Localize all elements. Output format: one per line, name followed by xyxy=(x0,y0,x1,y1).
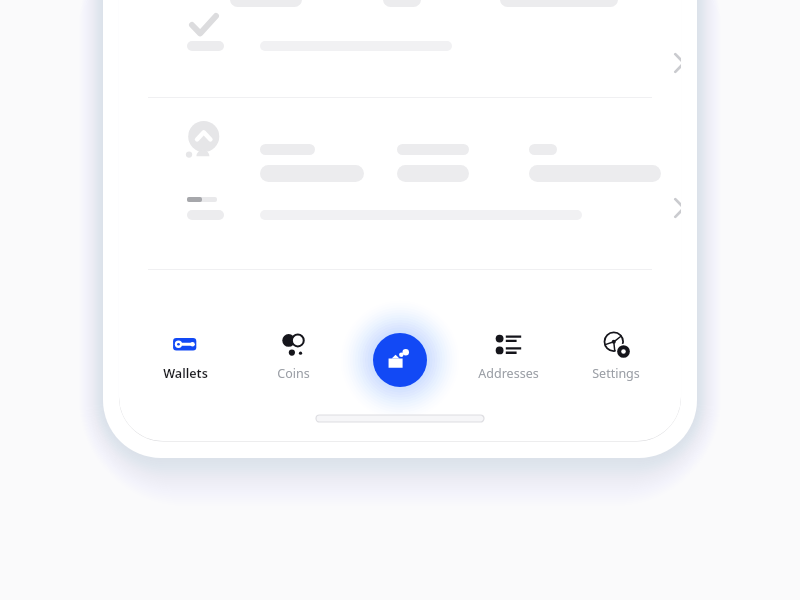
button[interactable]: Wallets xyxy=(143,325,227,383)
button[interactable]: Coins xyxy=(251,325,335,383)
button[interactable]: Addresses xyxy=(466,325,550,383)
button[interactable]: Settings xyxy=(574,325,658,383)
staticText: Wallets xyxy=(163,365,208,382)
staticText: Settings xyxy=(592,365,640,382)
button[interactable]: Receive xyxy=(373,333,427,387)
button[interactable] xyxy=(148,118,652,238)
staticText: Coins xyxy=(277,365,310,382)
button[interactable] xyxy=(148,0,652,88)
staticText: Addresses xyxy=(478,365,539,382)
